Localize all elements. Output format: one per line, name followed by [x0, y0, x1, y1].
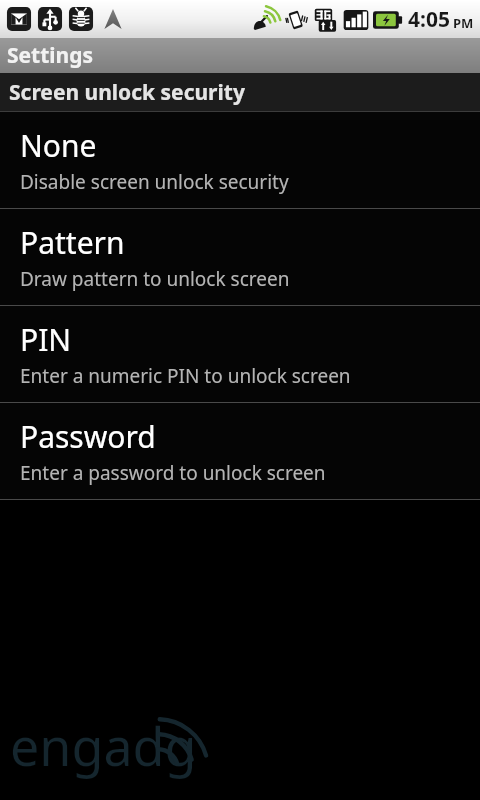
other: GPS active — [100, 6, 126, 32]
other: Battery charging — [373, 7, 403, 33]
button[interactable]: None — [0, 112, 480, 208]
staticText: Password — [20, 416, 156, 457]
staticText: Pattern — [20, 222, 125, 263]
other: Cellular signal strength — [342, 6, 370, 34]
staticText: Disable screen unlock security — [20, 169, 289, 195]
staticText: engadget — [10, 710, 206, 788]
staticText: Enter a numeric PIN to unlock screen — [20, 363, 351, 389]
button[interactable]: Pattern — [0, 209, 480, 305]
staticText: Settings — [7, 41, 94, 70]
staticText: Enter a password to unlock screen — [20, 460, 326, 486]
staticText: PIN — [20, 319, 72, 360]
staticText: Screen unlock security — [9, 78, 245, 107]
staticText: Draw pattern to unlock screen — [20, 266, 290, 292]
staticText: PM — [453, 14, 474, 32]
other: Debugging enabled — [67, 5, 95, 33]
other: Vibrate mode — [284, 6, 310, 34]
staticText: None — [20, 125, 97, 166]
other: 3G data connection — [312, 6, 340, 34]
other: Wi-Fi connected — [252, 6, 282, 34]
button[interactable]: Password — [0, 403, 480, 499]
button[interactable]: PIN — [0, 306, 480, 402]
staticText: 4:05 — [408, 5, 450, 34]
other: Gmail notification — [5, 5, 33, 33]
other: USB connected — [36, 5, 64, 33]
